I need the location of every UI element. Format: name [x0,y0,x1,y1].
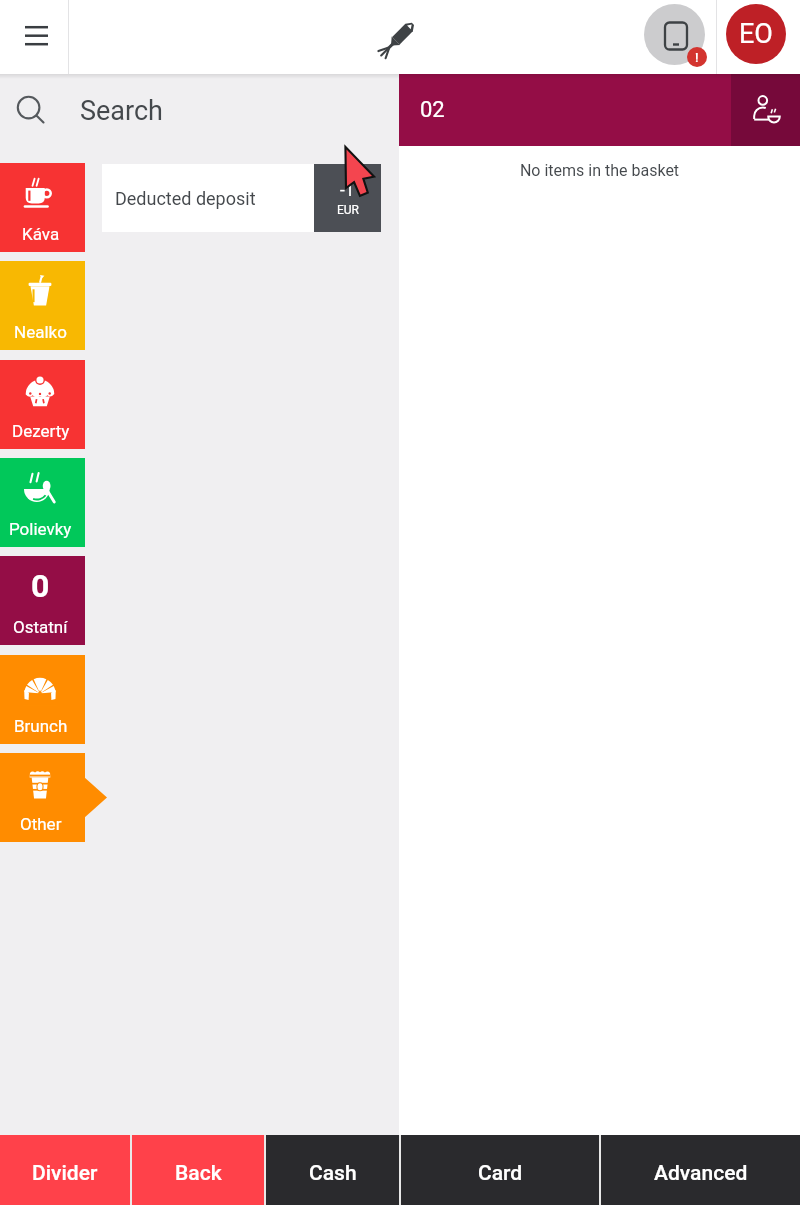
button[interactable]: Connected device [644,4,707,67]
staticText: Search [80,95,163,127]
staticText: Other [20,814,62,834]
staticText: Deducted deposit [115,188,256,209]
staticText: 02 [420,97,445,123]
staticText: Polievky [9,519,72,539]
staticText: Brunch [14,716,68,736]
button[interactable]: Quick actions [378,16,420,58]
button[interactable]: 0 [0,556,85,645]
button[interactable]: User profile EO [726,4,786,64]
button[interactable]: Advanced [601,1135,800,1205]
button[interactable]: Back [132,1135,264,1205]
button[interactable]: Brunch [0,655,85,744]
button[interactable]: Assign waiter [731,74,800,146]
staticText: Back [175,1161,222,1186]
staticText: Advanced [654,1161,748,1186]
button[interactable]: Dezerty [0,360,85,449]
staticText: Dezerty [12,421,70,441]
staticText: Divider [32,1161,98,1186]
staticText: Ostatní [13,617,68,637]
button[interactable]: Deducted deposit [102,164,381,232]
button[interactable]: Divider [0,1135,130,1205]
button[interactable]: Search [0,74,399,147]
staticText: 0 [31,567,50,605]
staticText: Nealko [14,322,67,342]
staticText: Káva [22,224,60,244]
button[interactable]: 02 [399,74,731,146]
button[interactable]: Cash [266,1135,399,1205]
button[interactable]: Káva [0,163,85,252]
staticText: No items in the basket [399,161,800,180]
staticText: Card [478,1161,523,1186]
staticText: Cash [309,1161,357,1186]
staticText: ! [695,50,699,65]
staticText: -1 [340,180,355,200]
button[interactable]: Card [401,1135,599,1205]
button[interactable]: Other [0,753,85,842]
button[interactable]: Polievky [0,458,85,547]
button[interactable]: Open menu [0,0,68,74]
button[interactable]: Nealko [0,261,85,350]
staticText: EO [739,18,773,50]
staticText: EUR [337,203,359,217]
